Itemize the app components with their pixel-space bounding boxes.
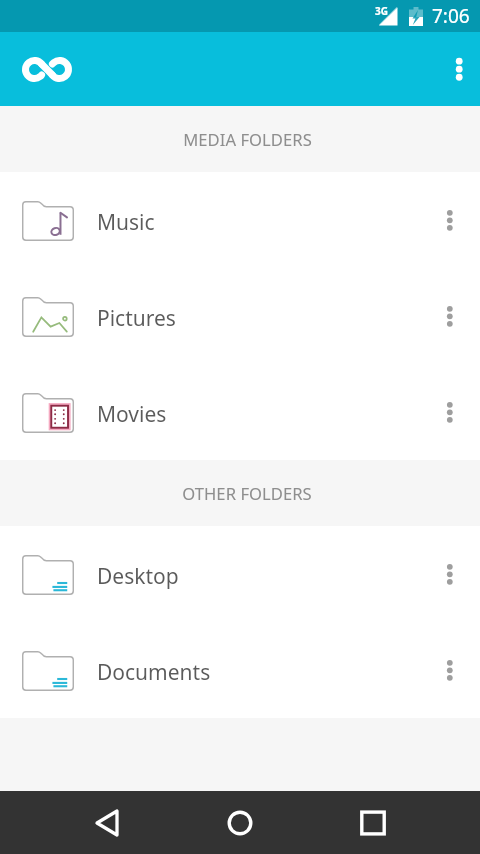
button[interactable]: Movies — [0, 364, 480, 460]
staticText: 3G — [375, 4, 388, 18]
staticText: Pictures — [97, 304, 176, 333]
button[interactable]: Pictures — [0, 268, 480, 364]
button[interactable]: OTHER FOLDERS — [0, 460, 480, 526]
button[interactable]: MEDIA FOLDERS — [0, 106, 480, 172]
button[interactable]: Back — [79, 795, 135, 851]
button[interactable]: Recent apps — [345, 795, 401, 851]
button[interactable]: App logo — [13, 46, 81, 92]
button[interactable]: More options for Movies — [423, 386, 475, 438]
staticText: Documents — [97, 658, 211, 687]
button[interactable]: Home — [212, 795, 268, 851]
button[interactable]: More options for Pictures — [423, 290, 475, 342]
staticText: Movies — [97, 400, 167, 429]
staticText: MEDIA FOLDERS — [183, 128, 312, 151]
staticText: 7:06 — [432, 3, 470, 29]
button[interactable]: More options for Desktop — [423, 548, 475, 600]
button[interactable]: More options for Music — [423, 194, 475, 246]
button[interactable]: More options — [432, 45, 480, 93]
staticText: Music — [97, 208, 155, 237]
button[interactable]: Desktop — [0, 526, 480, 622]
button[interactable]: Documents — [0, 622, 480, 718]
staticText: Desktop — [97, 562, 179, 591]
staticText: OTHER FOLDERS — [182, 482, 312, 505]
button[interactable]: More options for Documents — [423, 644, 475, 696]
button[interactable]: Music — [0, 172, 480, 268]
